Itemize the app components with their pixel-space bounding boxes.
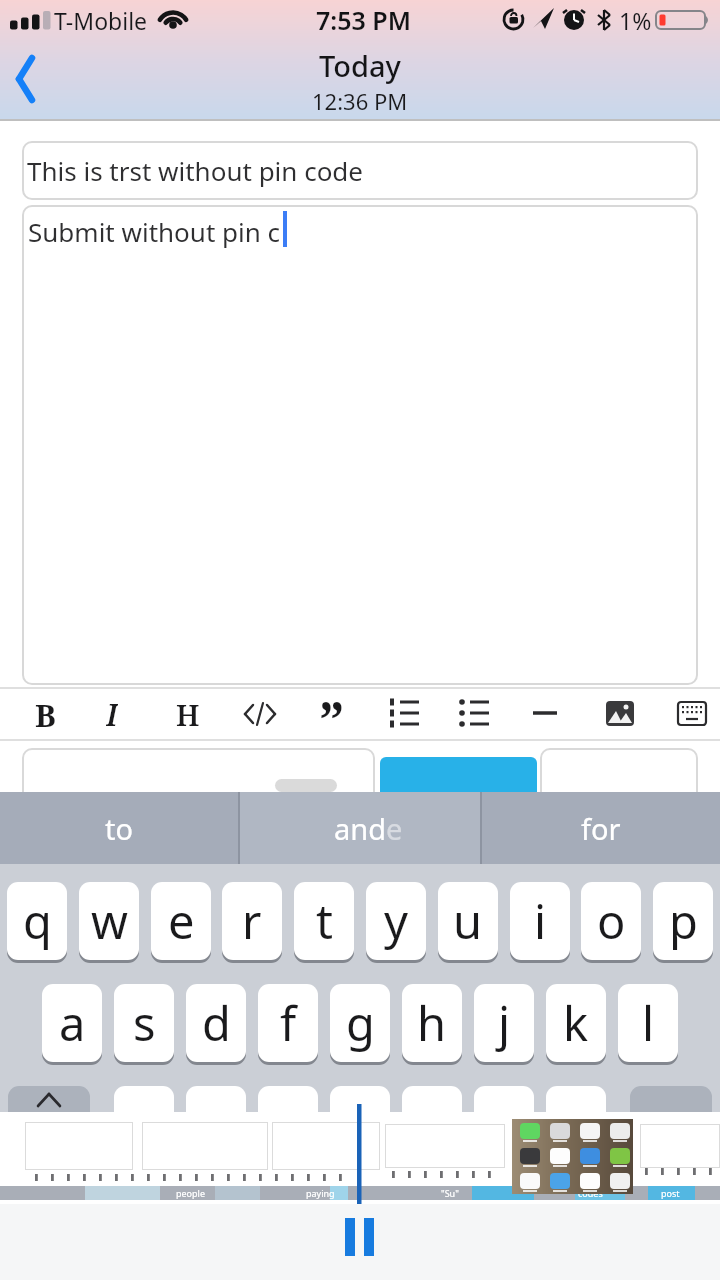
staticText: 7:53 PM	[316, 3, 411, 37]
staticText: 1%	[619, 5, 652, 36]
button[interactable]	[380, 757, 537, 792]
staticText: 12:36 PM	[312, 86, 408, 114]
staticText: p	[669, 889, 698, 953]
staticText: y	[384, 889, 408, 953]
button[interactable]	[258, 1086, 318, 1164]
button[interactable]: to	[0, 792, 238, 865]
button[interactable]: H	[173, 694, 203, 734]
button[interactable]: g	[330, 984, 390, 1062]
button[interactable]: for	[482, 792, 720, 865]
button[interactable]	[630, 1086, 712, 1164]
staticText: h	[417, 991, 447, 1055]
staticText: i	[534, 889, 547, 953]
button[interactable]	[236, 690, 284, 738]
staticText: w	[91, 889, 128, 953]
staticText: paying	[306, 1187, 335, 1199]
button[interactable]	[451, 690, 499, 738]
button[interactable]: l	[618, 984, 678, 1062]
button[interactable]: h	[402, 984, 462, 1062]
staticText: I	[106, 694, 118, 734]
button[interactable]: ”	[313, 684, 351, 732]
staticText: Today	[319, 46, 401, 84]
button[interactable]: s	[114, 984, 174, 1062]
button[interactable]	[668, 690, 716, 738]
staticText: post	[661, 1187, 680, 1199]
staticText: l	[642, 991, 655, 1055]
staticText: d	[202, 991, 231, 1055]
staticText: T-Mobile	[54, 5, 148, 36]
staticText: a	[59, 991, 86, 1055]
button[interactable]: Submit without pin c	[22, 205, 698, 685]
button[interactable]	[330, 1205, 390, 1267]
staticText: for	[581, 809, 621, 848]
staticText: t	[316, 889, 333, 953]
staticText: s	[133, 991, 156, 1055]
button[interactable]: o	[581, 882, 641, 960]
button[interactable]	[521, 690, 569, 738]
button[interactable]: a	[42, 984, 102, 1062]
staticText: B	[35, 694, 56, 734]
staticText: ”	[319, 684, 345, 732]
button[interactable]: j	[474, 984, 534, 1062]
button[interactable]	[546, 1086, 606, 1164]
button[interactable]	[380, 690, 428, 738]
staticText: e	[168, 889, 195, 953]
staticText: r	[242, 889, 262, 953]
staticText: g	[346, 991, 375, 1055]
staticText: H	[176, 695, 200, 734]
button[interactable]: u	[438, 882, 498, 960]
button[interactable]	[186, 1086, 246, 1164]
staticText: f	[280, 991, 297, 1055]
button[interactable]: and	[240, 792, 480, 865]
button[interactable]: e	[151, 882, 211, 960]
button[interactable]: w	[79, 882, 139, 960]
button[interactable]: This is trst without pin code	[22, 141, 698, 200]
staticText: "Su"	[441, 1187, 459, 1199]
button[interactable]: f	[258, 984, 318, 1062]
staticText: u	[453, 889, 483, 953]
button[interactable]: p	[653, 882, 713, 960]
button[interactable]: I	[97, 694, 127, 734]
button[interactable]: i	[510, 882, 570, 960]
staticText: o	[597, 889, 626, 953]
button[interactable]: t	[294, 882, 354, 960]
staticText: and	[334, 809, 387, 848]
button[interactable]: d	[186, 984, 246, 1062]
button[interactable]: B	[30, 694, 60, 734]
button[interactable]: r	[222, 882, 282, 960]
button[interactable]: k	[546, 984, 606, 1062]
button[interactable]	[474, 1086, 534, 1164]
staticText: codes	[578, 1187, 603, 1199]
button[interactable]: q	[7, 882, 67, 960]
button[interactable]	[8, 1086, 90, 1164]
staticText: e	[386, 809, 403, 848]
staticText: Submit without pin c	[28, 214, 281, 249]
staticText: k	[563, 991, 589, 1055]
staticText: q	[23, 889, 52, 953]
staticText: people	[176, 1187, 205, 1199]
button[interactable]	[114, 1086, 174, 1164]
button[interactable]: y	[366, 882, 426, 960]
button[interactable]	[402, 1086, 462, 1164]
button[interactable]	[6, 50, 50, 110]
staticText: to	[105, 809, 134, 848]
staticText: j	[498, 991, 511, 1055]
button[interactable]	[596, 690, 644, 738]
staticText: This is trst without pin code	[27, 153, 364, 188]
button[interactable]	[330, 1086, 390, 1164]
